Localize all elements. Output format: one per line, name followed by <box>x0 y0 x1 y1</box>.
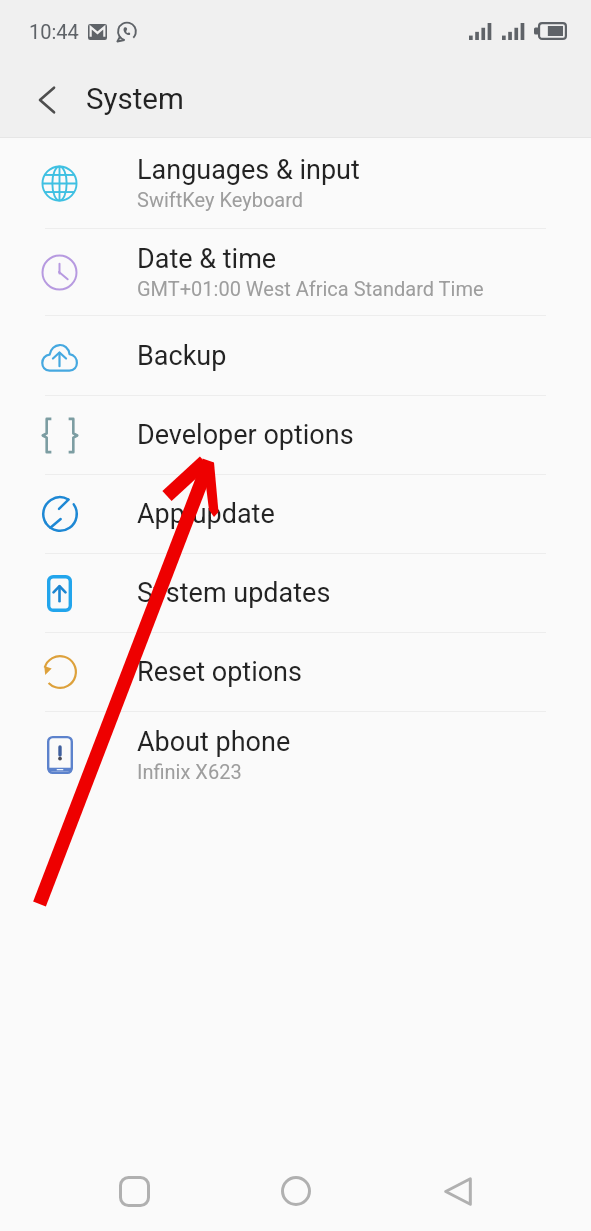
button[interactable]: Date & time <box>0 229 591 315</box>
staticText: Date & time <box>137 243 277 275</box>
staticText: System <box>86 82 184 117</box>
button[interactable]: Backup <box>0 316 591 395</box>
button[interactable]: System updates <box>0 554 591 632</box>
button[interactable]: About phone <box>0 712 591 798</box>
button[interactable]: Reset options <box>0 633 591 711</box>
staticText: About phone <box>137 726 291 758</box>
staticText: SwiftKey Keyboard <box>137 188 304 211</box>
staticText: GMT+01:00 West Africa Standard Time <box>137 277 484 300</box>
staticText: Developer options <box>137 419 354 451</box>
button[interactable]: Navigate up <box>0 62 88 137</box>
button[interactable]: Home <box>215 1147 377 1231</box>
button[interactable]: Back <box>377 1147 539 1231</box>
staticText: 10:44 <box>29 20 79 43</box>
button[interactable]: Recent apps <box>53 1147 215 1231</box>
staticText: Backup <box>137 340 227 372</box>
button[interactable]: Developer options <box>0 396 591 474</box>
staticText: System updates <box>137 577 331 609</box>
button[interactable]: Languages & input <box>0 138 591 228</box>
button[interactable]: App update <box>0 475 591 553</box>
staticText: Languages & input <box>137 154 360 186</box>
staticText: Infinix X623 <box>137 760 242 783</box>
staticText: Reset options <box>137 656 302 688</box>
staticText: App update <box>137 498 275 530</box>
